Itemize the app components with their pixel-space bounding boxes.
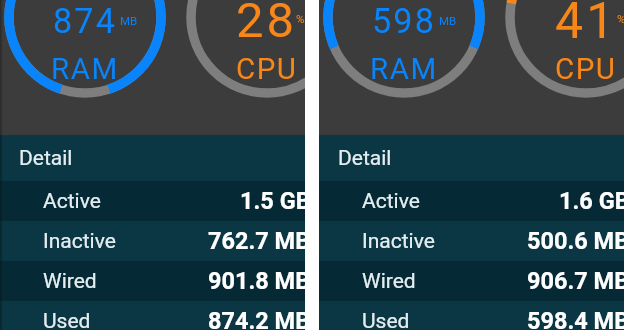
staticText: CPU bbox=[236, 52, 298, 87]
button[interactable]: RAM usage bbox=[319, 1, 514, 89]
staticText: 1.6 GB bbox=[559, 187, 624, 215]
staticText: 901.8 MB bbox=[208, 267, 305, 295]
button[interactable]: Used bbox=[0, 301, 305, 330]
staticText: Wired bbox=[362, 269, 416, 294]
button[interactable]: Active bbox=[0, 181, 305, 221]
button[interactable]: Inactive bbox=[0, 221, 305, 261]
button[interactable]: CPU usage bbox=[157, 0, 305, 89]
staticText: 874 bbox=[53, 1, 118, 41]
staticText: 906.7 MB bbox=[527, 267, 624, 295]
staticText: RAM bbox=[370, 52, 438, 87]
button[interactable]: Wired bbox=[319, 261, 624, 301]
staticText: 500.6 MB bbox=[527, 227, 624, 255]
button[interactable]: RAM usage bbox=[0, 1, 195, 89]
staticText: Detail bbox=[338, 146, 392, 171]
staticText: MB bbox=[120, 14, 138, 27]
button[interactable]: CPU usage bbox=[476, 0, 624, 89]
button[interactable]: Used bbox=[319, 301, 624, 330]
staticText: CPU bbox=[555, 52, 617, 87]
staticText: Used bbox=[362, 309, 410, 330]
staticText: 598.4 MB bbox=[527, 307, 624, 330]
staticText: Inactive bbox=[362, 229, 435, 254]
staticText: 762.7 MB bbox=[208, 227, 305, 255]
staticText: 1.5 GB bbox=[240, 187, 305, 215]
staticText: Active bbox=[362, 189, 420, 214]
staticText: Detail bbox=[19, 146, 73, 171]
staticText: 874.2 MB bbox=[208, 307, 305, 330]
staticText: Inactive bbox=[43, 229, 116, 254]
staticText: 41 bbox=[555, 0, 618, 51]
button[interactable]: Detail bbox=[319, 135, 624, 181]
staticText: MB bbox=[439, 14, 457, 27]
button[interactable]: Active bbox=[319, 181, 624, 221]
staticText: 598 bbox=[372, 1, 437, 41]
staticText: RAM bbox=[51, 52, 119, 87]
staticText: 28 bbox=[236, 0, 298, 49]
button[interactable]: Inactive bbox=[319, 221, 624, 261]
button[interactable]: Wired bbox=[0, 261, 305, 301]
staticText: % bbox=[296, 12, 305, 25]
staticText: % bbox=[617, 12, 624, 25]
staticText: Active bbox=[43, 189, 101, 214]
button[interactable]: Detail bbox=[0, 135, 305, 181]
staticText: Used bbox=[43, 309, 91, 330]
staticText: Wired bbox=[43, 269, 97, 294]
